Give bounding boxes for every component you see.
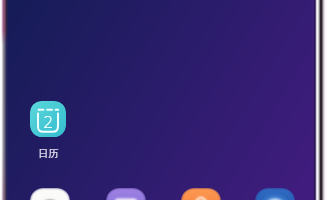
staticText: 2 xyxy=(41,110,55,128)
button[interactable]: Contacts xyxy=(181,188,221,200)
button[interactable]: Phone xyxy=(30,188,70,200)
button[interactable]: Browser xyxy=(255,188,295,200)
staticText: 日历 xyxy=(26,147,71,161)
button[interactable]: Messages xyxy=(106,188,146,200)
button[interactable]: Calendar xyxy=(30,101,66,137)
